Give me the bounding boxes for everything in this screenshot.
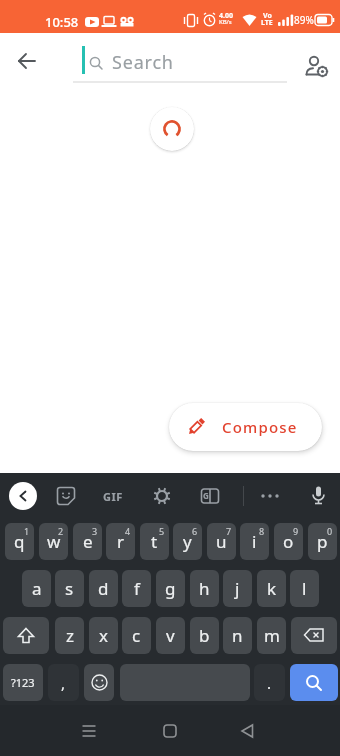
button[interactable]: u bbox=[207, 523, 236, 560]
staticText: Vo bbox=[263, 11, 272, 21]
button[interactable]: Compose bbox=[169, 403, 322, 451]
button[interactable]: h bbox=[190, 570, 219, 607]
staticText: f bbox=[134, 577, 140, 600]
button[interactable]: r bbox=[106, 523, 135, 560]
button[interactable] bbox=[76, 718, 102, 744]
button[interactable]: f bbox=[122, 570, 151, 607]
staticText: y bbox=[183, 530, 192, 553]
staticText: x bbox=[99, 624, 108, 647]
button[interactable]: z bbox=[55, 617, 84, 654]
button[interactable] bbox=[234, 718, 260, 744]
button[interactable] bbox=[259, 485, 281, 507]
button[interactable]: q bbox=[5, 523, 34, 560]
button[interactable]: o bbox=[274, 523, 303, 560]
button[interactable]: w bbox=[39, 523, 68, 560]
button[interactable] bbox=[3, 617, 49, 654]
staticText: 8 bbox=[259, 525, 265, 537]
button[interactable]: y bbox=[173, 523, 202, 560]
staticText: d bbox=[98, 577, 109, 600]
button[interactable]: a bbox=[22, 570, 51, 607]
staticText: , bbox=[61, 673, 66, 693]
button[interactable]: GIF bbox=[103, 489, 123, 504]
staticText: z bbox=[66, 624, 74, 647]
button[interactable] bbox=[55, 485, 77, 507]
staticText: 4 bbox=[125, 525, 131, 537]
button[interactable]: d bbox=[89, 570, 118, 607]
staticText: b bbox=[199, 624, 210, 647]
staticText: 1 bbox=[24, 525, 30, 537]
button[interactable]: , bbox=[48, 664, 79, 701]
staticText: 6 bbox=[192, 525, 198, 537]
staticText: KB/s bbox=[219, 18, 232, 26]
staticText: Search bbox=[112, 50, 174, 75]
staticText: 7 bbox=[226, 525, 232, 537]
staticText: 3 bbox=[92, 525, 98, 537]
staticText: LTE bbox=[261, 18, 273, 28]
button[interactable]: k bbox=[257, 570, 286, 607]
staticText: k bbox=[267, 577, 277, 600]
staticText: 10:58 bbox=[45, 13, 79, 31]
staticText: u bbox=[216, 530, 227, 553]
staticText: q bbox=[14, 530, 25, 553]
staticText: g bbox=[165, 577, 176, 600]
button[interactable]: n bbox=[223, 617, 252, 654]
button[interactable] bbox=[13, 47, 41, 75]
staticText: m bbox=[264, 624, 280, 647]
button[interactable]: t bbox=[140, 523, 169, 560]
staticText: 89% bbox=[294, 13, 314, 27]
staticText: r bbox=[117, 530, 125, 553]
button[interactable]: x bbox=[89, 617, 118, 654]
button[interactable] bbox=[157, 718, 183, 744]
button[interactable]: b bbox=[190, 617, 219, 654]
staticText: v bbox=[166, 624, 175, 647]
button[interactable]: ?123 bbox=[3, 664, 43, 701]
staticText: e bbox=[83, 530, 93, 553]
button[interactable]: i bbox=[240, 523, 269, 560]
staticText: w bbox=[47, 530, 61, 553]
button[interactable] bbox=[307, 484, 330, 507]
button[interactable]: j bbox=[223, 570, 252, 607]
button[interactable]: l bbox=[290, 570, 319, 607]
button[interactable] bbox=[84, 664, 114, 701]
button[interactable]: . bbox=[254, 664, 285, 701]
staticText: Compose bbox=[222, 417, 298, 437]
staticText: s bbox=[65, 577, 74, 600]
button[interactable]: p bbox=[308, 523, 337, 560]
staticText: 5 bbox=[159, 525, 165, 537]
button[interactable]: e bbox=[73, 523, 102, 560]
staticText: h bbox=[199, 577, 210, 600]
button[interactable]: s bbox=[55, 570, 84, 607]
staticText: l bbox=[302, 577, 307, 600]
staticText: 0 bbox=[327, 525, 333, 537]
button[interactable]: v bbox=[156, 617, 185, 654]
button[interactable] bbox=[9, 482, 37, 510]
button[interactable] bbox=[290, 664, 338, 701]
button[interactable]: g bbox=[156, 570, 185, 607]
staticText: a bbox=[32, 577, 42, 600]
staticText: 4.00 bbox=[219, 11, 233, 21]
staticText: ?123 bbox=[11, 675, 35, 690]
staticText: t bbox=[151, 530, 158, 553]
staticText: p bbox=[317, 530, 328, 553]
staticText: o bbox=[283, 530, 294, 553]
button[interactable]: G bbox=[199, 485, 221, 507]
staticText: . bbox=[267, 673, 272, 693]
button[interactable] bbox=[291, 617, 337, 654]
staticText: 9 bbox=[293, 525, 299, 537]
button[interactable] bbox=[151, 485, 173, 507]
staticText: j bbox=[235, 577, 240, 600]
button[interactable]: c bbox=[122, 617, 151, 654]
staticText: G bbox=[203, 490, 209, 501]
button[interactable] bbox=[301, 52, 333, 84]
button[interactable]: m bbox=[257, 617, 286, 654]
staticText: n bbox=[232, 624, 243, 647]
staticText: c bbox=[132, 624, 141, 647]
staticText: 2 bbox=[58, 525, 64, 537]
staticText: i bbox=[252, 530, 257, 553]
